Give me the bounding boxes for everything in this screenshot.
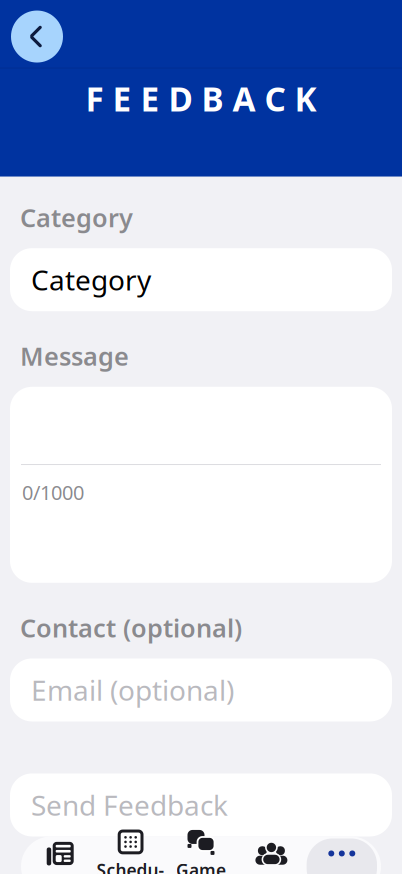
staticText: Message xyxy=(20,339,129,373)
button[interactable]: Send Feedback xyxy=(10,773,392,836)
button[interactable]: More xyxy=(307,838,377,874)
staticText: F E E D B A C K xyxy=(85,76,316,121)
button[interactable]: Game Chat xyxy=(166,838,236,874)
button[interactable]: Category xyxy=(10,248,392,311)
staticText: 0/1000 xyxy=(22,479,84,506)
staticText: Category xyxy=(31,261,151,298)
button[interactable]: Back xyxy=(11,10,63,62)
staticText: Category xyxy=(20,200,133,234)
staticText: Send Feedback xyxy=(31,786,228,824)
button[interactable]: Schedules xyxy=(95,838,166,874)
staticText: Contact (optional) xyxy=(20,611,242,644)
button[interactable]: News xyxy=(25,838,95,874)
staticText: Game Chat xyxy=(176,858,226,874)
staticText: Schedules xyxy=(97,858,165,874)
button[interactable]: Email (optional) xyxy=(10,658,392,721)
button[interactable]: Social xyxy=(236,838,307,874)
staticText: Email (optional) xyxy=(31,671,234,709)
